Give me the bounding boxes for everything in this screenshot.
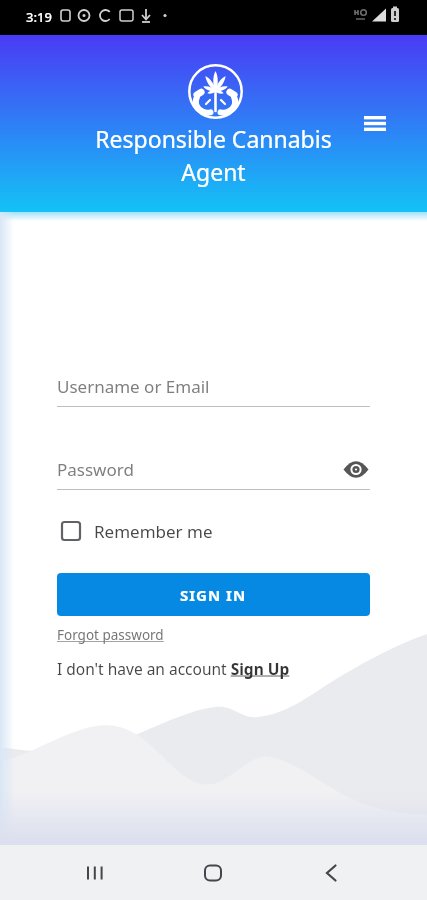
staticText: I don't have an account Sign Up [57,658,290,679]
button[interactable]: Forgot password [57,626,164,644]
button[interactable]: I don't have an account Sign Up [57,658,290,679]
staticText: Agent [181,156,246,187]
staticText: Password [57,458,134,481]
button[interactable] [75,853,115,893]
button[interactable] [340,457,372,483]
staticText: Remember me [94,520,213,543]
button[interactable]: Remember me [61,519,213,543]
staticText: Responsible Cannabis [95,123,332,154]
button[interactable] [358,109,392,137]
staticText: SIGN IN [180,585,247,605]
staticText: Forgot password [57,626,164,644]
button[interactable]: SIGN IN [57,573,370,616]
button[interactable] [193,853,233,893]
button[interactable]: Password [57,444,370,490]
staticText: Username or Email [57,375,210,398]
button[interactable] [311,853,351,893]
staticText: 3:19 [26,8,52,26]
button[interactable]: Username or Email [57,362,370,407]
